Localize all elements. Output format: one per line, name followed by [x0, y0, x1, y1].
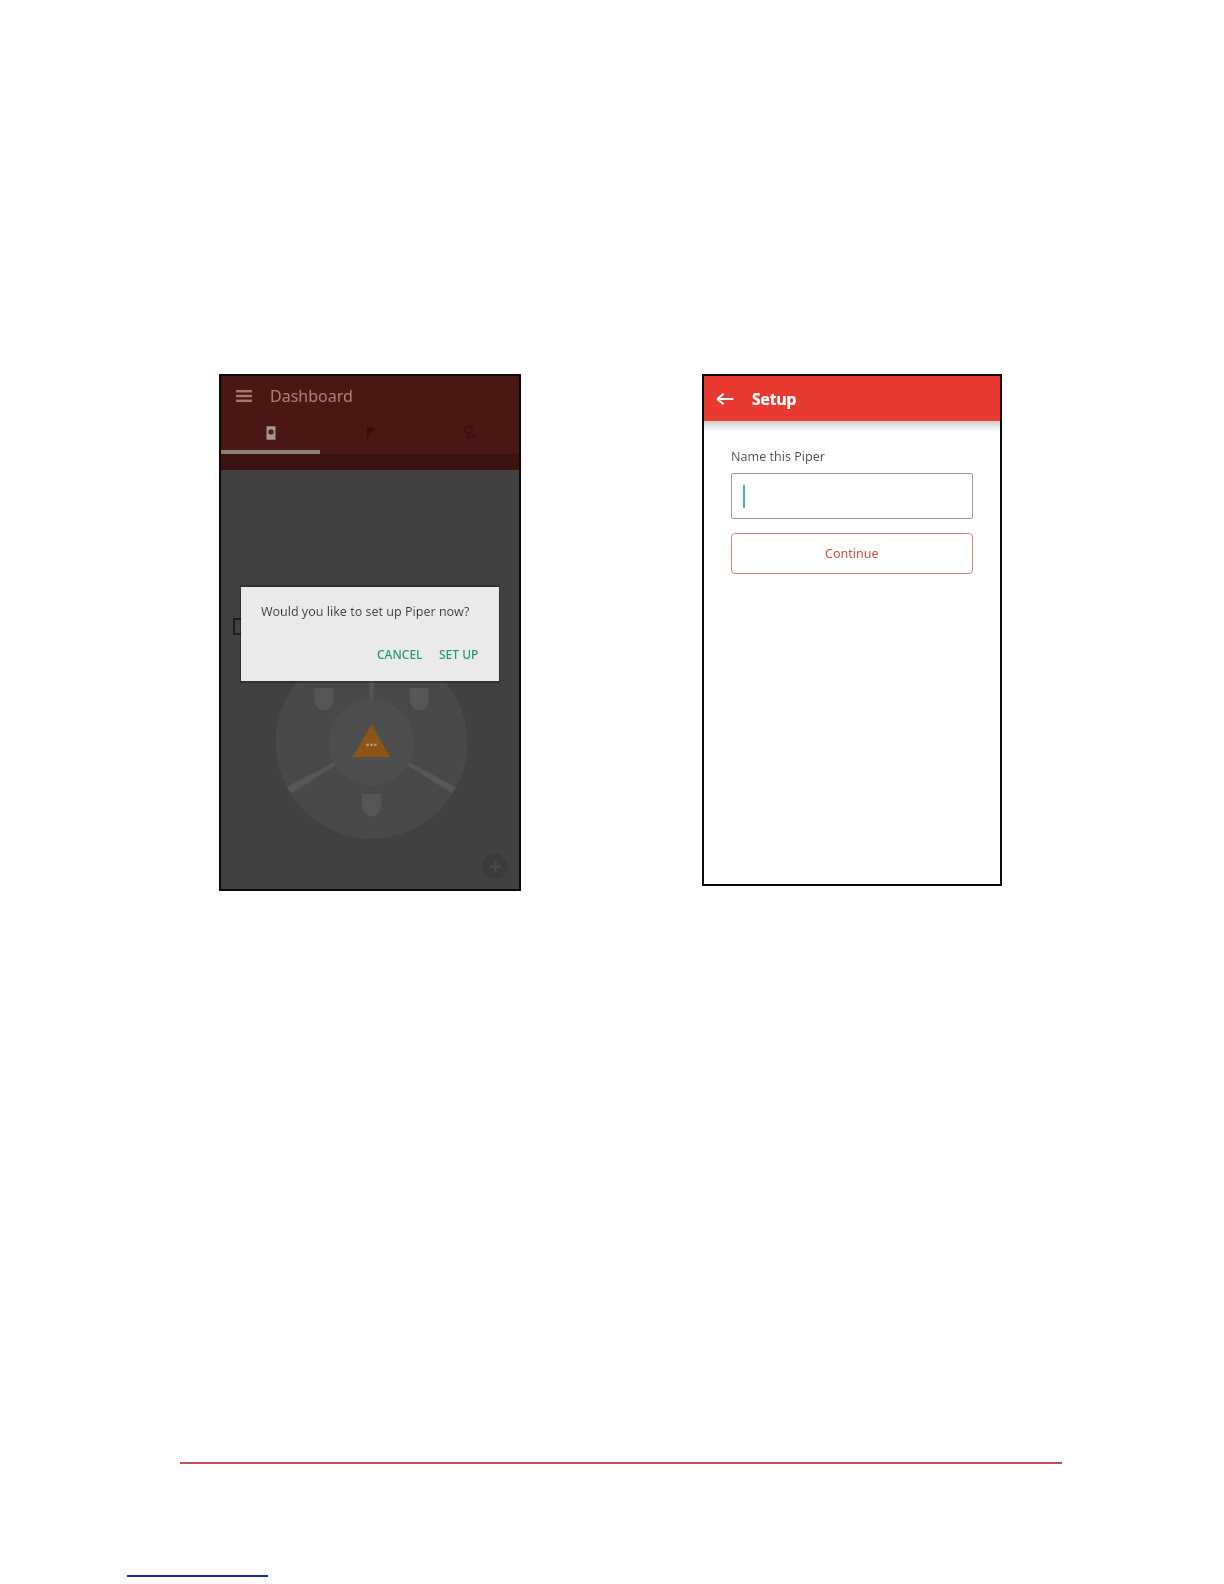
button[interactable]: Add: [482, 853, 508, 879]
staticText: SET UP: [439, 646, 479, 662]
staticText: Continue: [825, 545, 879, 562]
button[interactable]: SET UP: [435, 642, 483, 666]
button[interactable]: Continue: [731, 533, 973, 574]
button[interactable]: Cameras: [221, 416, 321, 450]
staticText: Name this Piper: [731, 448, 825, 465]
button[interactable]: Open navigation menu: [233, 385, 255, 407]
staticText: CANCEL: [377, 646, 423, 662]
staticText: Would you like to set up Piper now?: [261, 603, 470, 620]
button[interactable]: [731, 473, 973, 519]
button[interactable]: Back: [713, 387, 737, 411]
button[interactable]: CANCEL: [373, 642, 427, 666]
staticText: Setup: [752, 388, 797, 409]
staticText: Dashboard: [270, 385, 353, 407]
